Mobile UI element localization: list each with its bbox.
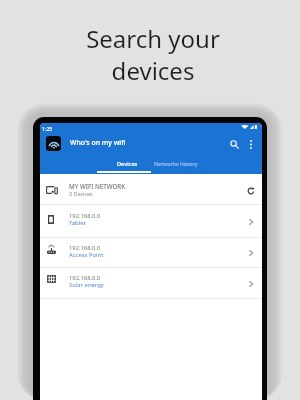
button[interactable]: 192.168.0.0 — [40, 205, 262, 237]
button[interactable]: Search — [226, 136, 243, 153]
button[interactable]: MY WIFI NETWORK — [40, 174, 262, 204]
staticText: Who's on my wifi — [70, 138, 126, 147]
staticText: MY WIFI NETWORK — [69, 182, 126, 190]
staticText: 192.168.0.0 — [69, 274, 101, 282]
staticText: Tablet — [69, 219, 86, 227]
staticText: Networks history — [154, 160, 198, 167]
button[interactable]: Networks history — [152, 155, 200, 174]
staticText: 1:25 — [42, 125, 53, 132]
staticText: 3 Devices — [69, 190, 93, 197]
button[interactable]: 192.168.0.0 — [40, 268, 262, 298]
staticText: Devices — [117, 160, 138, 168]
button[interactable]: Devices — [96, 155, 158, 174]
staticText: 192.168.0.0 — [69, 212, 101, 220]
staticText: Access Point — [69, 251, 104, 259]
staticText: 192.168.0.0 — [69, 244, 101, 252]
button[interactable]: 192.168.0.0 — [40, 238, 262, 267]
button[interactable]: More options — [242, 136, 259, 153]
staticText: Search your devices — [86, 22, 220, 87]
button[interactable]: Refresh — [243, 183, 258, 198]
staticText: Solar energy — [69, 281, 104, 289]
